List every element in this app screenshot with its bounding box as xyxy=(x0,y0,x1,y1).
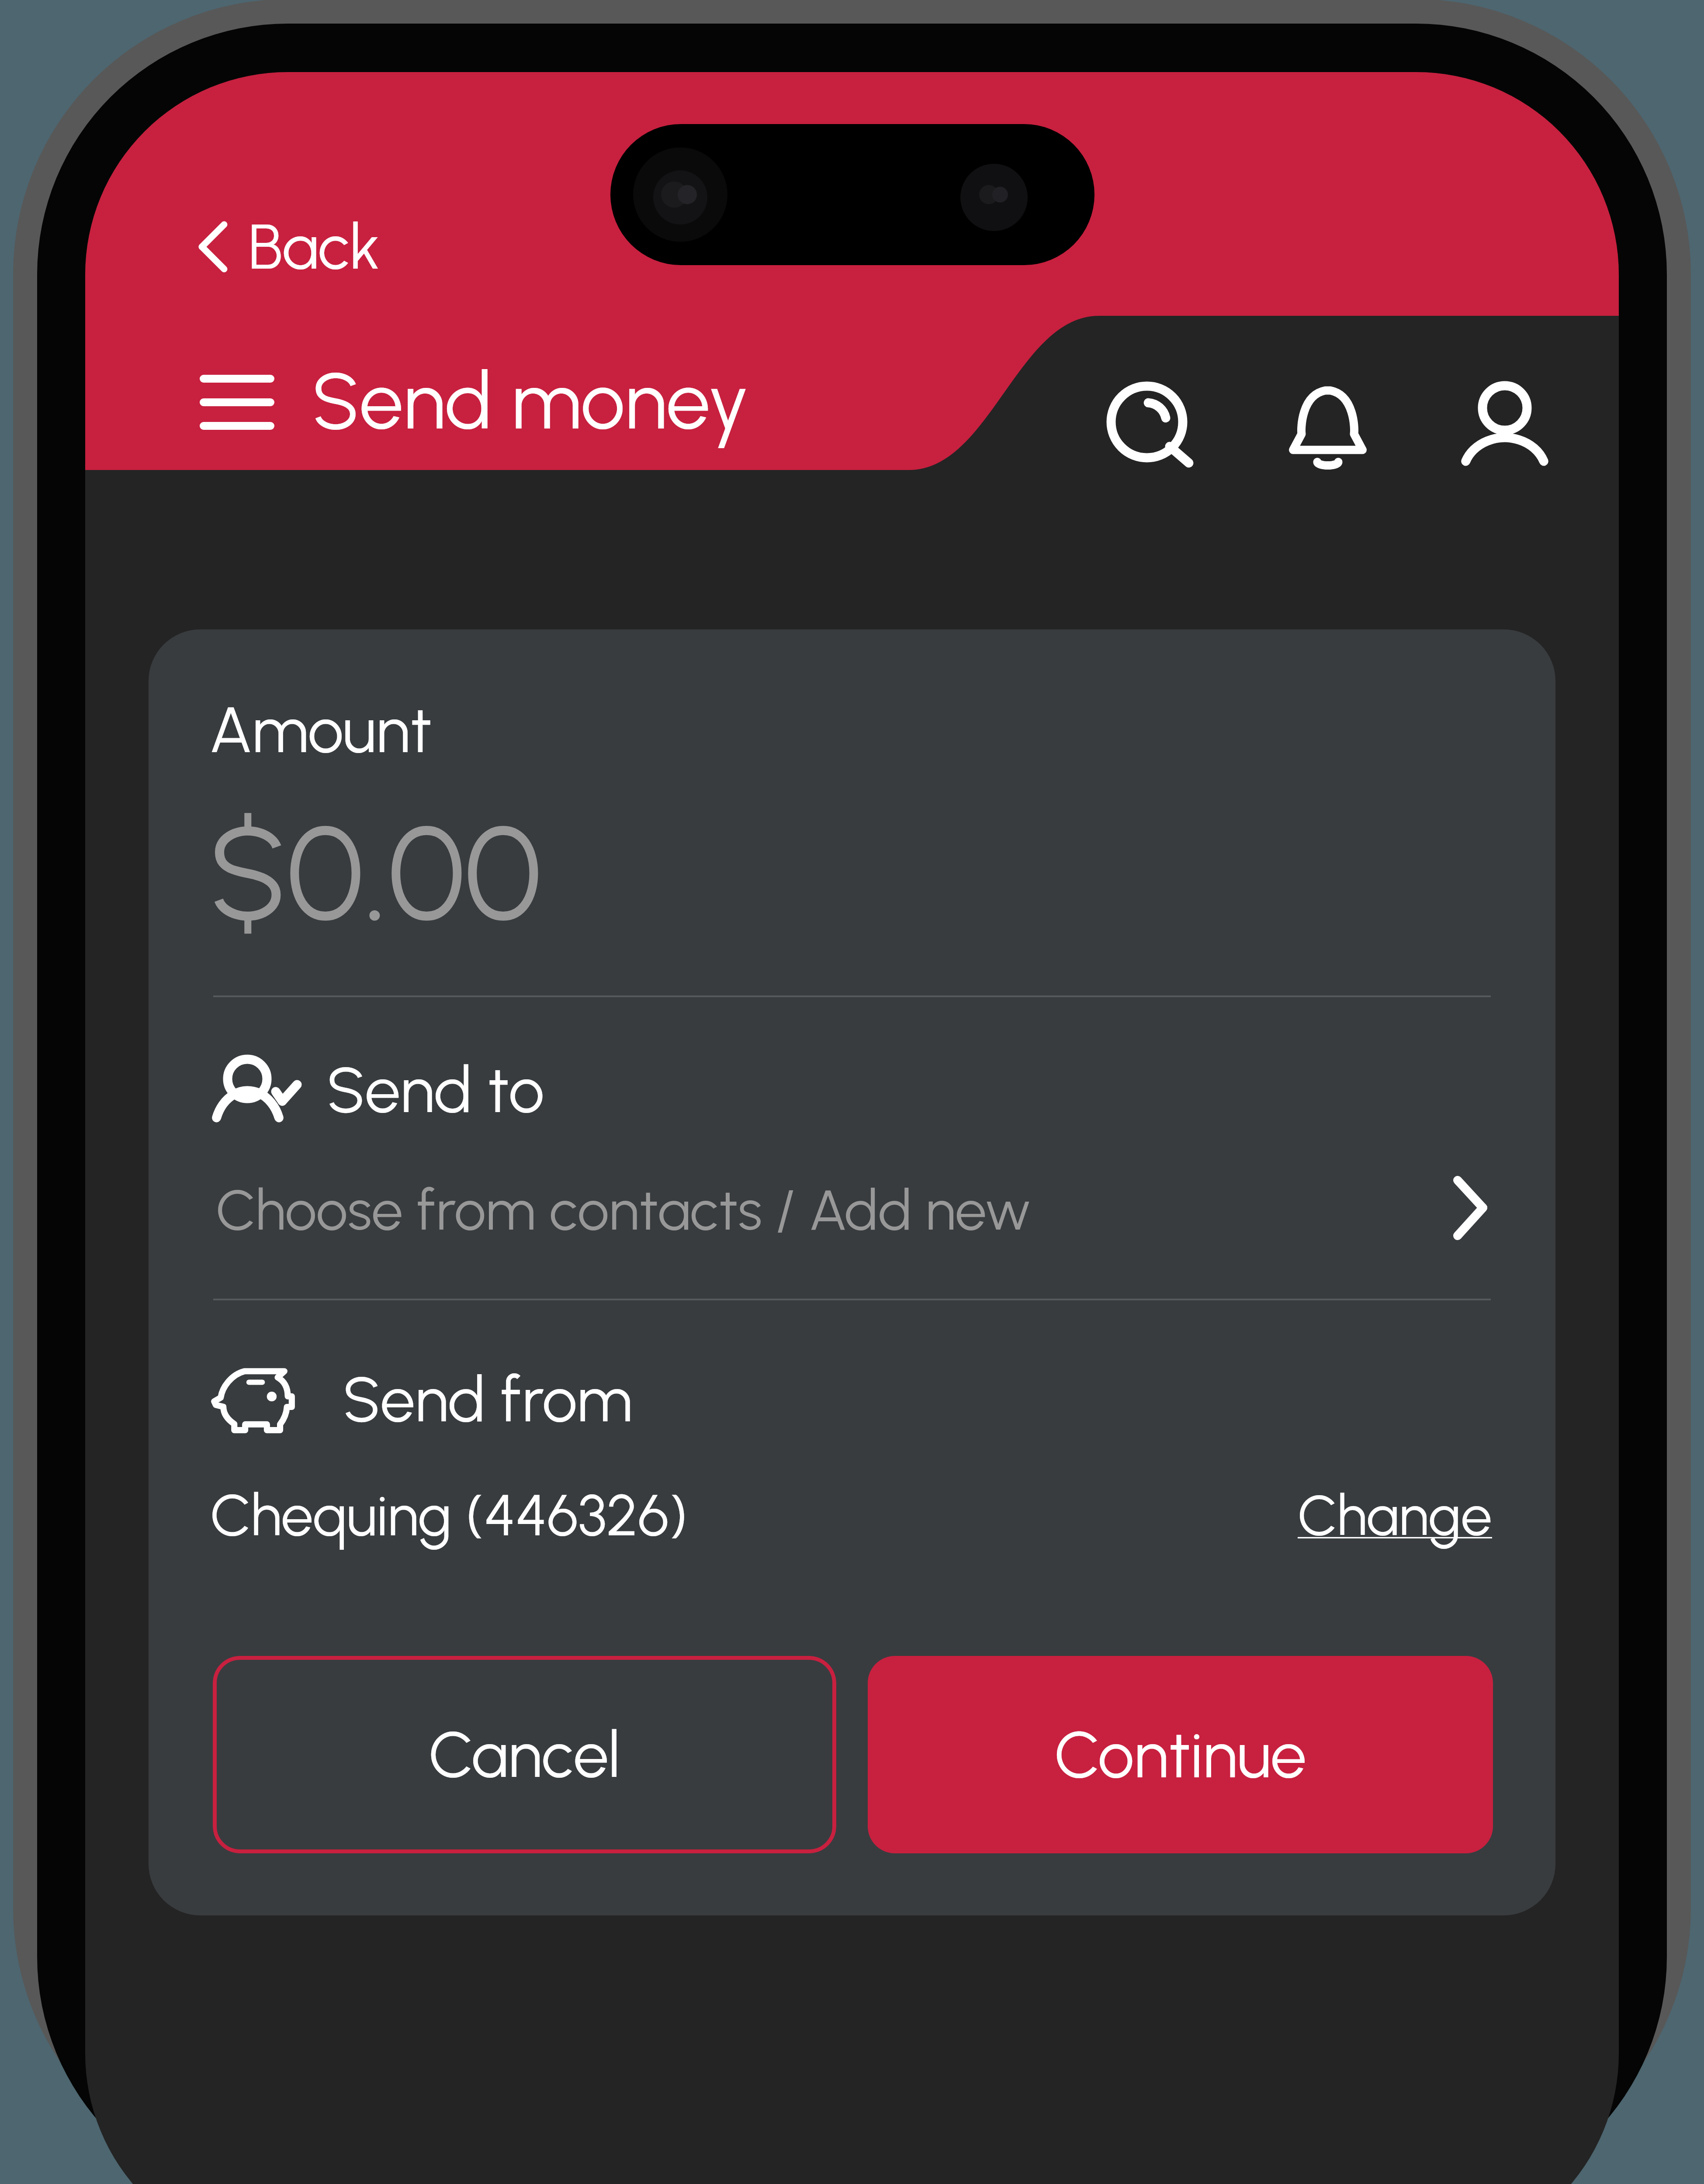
staticText: Amount xyxy=(209,691,432,768)
button[interactable]: Profile xyxy=(1439,356,1570,487)
staticText: Chequing (446326) xyxy=(210,1481,688,1550)
staticText: Send from xyxy=(343,1362,633,1437)
staticText: Cancel xyxy=(429,1717,620,1793)
button[interactable]: Continue xyxy=(868,1656,1493,1853)
button[interactable]: Back xyxy=(184,205,411,293)
button[interactable]: Choose from contacts / Add new xyxy=(213,1153,1491,1262)
button[interactable]: Notifications xyxy=(1262,355,1393,486)
staticText: Change xyxy=(1298,1482,1492,1549)
button[interactable]: Search xyxy=(1081,356,1212,487)
button[interactable]: Menu, Send money xyxy=(179,349,773,459)
staticText: Send money xyxy=(312,353,749,448)
staticText: Choose from contacts / Add new xyxy=(216,1176,1031,1244)
staticText: Continue xyxy=(1054,1716,1307,1794)
button[interactable]: Cancel xyxy=(213,1656,836,1853)
staticText: $0.00 xyxy=(209,795,542,952)
staticText: Back xyxy=(248,209,381,284)
staticText: Send to xyxy=(326,1051,544,1128)
button[interactable]: Change xyxy=(1267,1450,1512,1559)
